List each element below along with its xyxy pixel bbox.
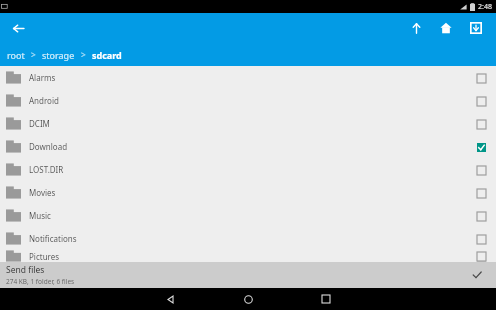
button[interactable]: Select DCIM bbox=[473, 116, 489, 132]
button[interactable]: Music bbox=[0, 204, 496, 227]
staticText: Movies bbox=[29, 187, 56, 198]
button[interactable]: Select Movies bbox=[473, 185, 489, 201]
staticText: Send files bbox=[6, 264, 45, 276]
button[interactable]: Android bbox=[0, 89, 496, 112]
staticText: Alarms bbox=[29, 72, 56, 83]
button[interactable]: Select Pictures bbox=[473, 250, 489, 262]
staticText: sdcard bbox=[92, 49, 122, 61]
button[interactable]: Select Android bbox=[473, 93, 489, 109]
button[interactable]: sdcard bbox=[91, 49, 123, 61]
button[interactable]: Download bbox=[0, 135, 496, 158]
button[interactable]: Notifications bbox=[0, 227, 496, 250]
staticText: LOST.DIR bbox=[29, 164, 64, 175]
button[interactable]: Up one level bbox=[404, 16, 428, 40]
button[interactable]: Selected Download bbox=[473, 139, 489, 155]
button[interactable]: Home bbox=[228, 288, 268, 310]
button[interactable]: Alarms bbox=[0, 66, 496, 89]
button[interactable]: root bbox=[6, 49, 26, 61]
staticText: > bbox=[81, 49, 86, 60]
button[interactable]: Select Music bbox=[473, 208, 489, 224]
button[interactable]: Select Alarms bbox=[473, 70, 489, 86]
button[interactable]: Recents bbox=[306, 288, 346, 310]
button[interactable]: Select LOST.DIR bbox=[473, 162, 489, 178]
button[interactable]: LOST.DIR bbox=[0, 158, 496, 181]
staticText: storage bbox=[42, 49, 75, 61]
staticText: 2:48 bbox=[478, 2, 492, 12]
staticText: DCIM bbox=[29, 118, 50, 129]
other: Confirm send bbox=[468, 266, 486, 284]
staticText: Pictures bbox=[29, 251, 60, 262]
staticText: > bbox=[31, 49, 36, 60]
staticText: Notifications bbox=[29, 233, 77, 244]
button[interactable]: Select Notifications bbox=[473, 231, 489, 247]
button[interactable]: DCIM bbox=[0, 112, 496, 135]
staticText: Android bbox=[29, 95, 59, 106]
button[interactable]: Download bbox=[464, 16, 488, 40]
button[interactable]: Home bbox=[434, 16, 458, 40]
staticText: Music bbox=[29, 210, 51, 221]
button[interactable]: Movies bbox=[0, 181, 496, 204]
staticText: root bbox=[7, 49, 25, 61]
button[interactable]: Pictures bbox=[0, 250, 496, 262]
staticText: 274 KB, 1 folder, 6 files bbox=[6, 277, 75, 286]
button[interactable]: Back bbox=[6, 16, 30, 40]
staticText: Download bbox=[29, 141, 68, 152]
button[interactable]: Back bbox=[150, 288, 190, 310]
button[interactable]: storage bbox=[41, 49, 76, 61]
button[interactable]: Send files bbox=[0, 262, 496, 288]
